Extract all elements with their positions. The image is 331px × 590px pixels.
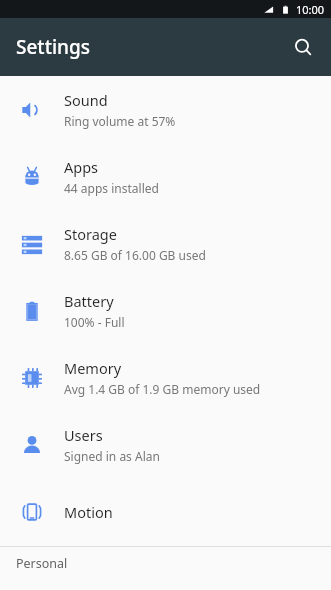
button[interactable]: Motion: [0, 478, 331, 545]
staticText: Users: [64, 425, 103, 445]
staticText: Ring volume at 57%: [64, 113, 176, 129]
button[interactable]: Search: [283, 27, 323, 67]
button[interactable]: Apps: [0, 143, 331, 210]
staticText: 100% - Full: [64, 314, 125, 330]
button[interactable]: Battery: [0, 277, 331, 344]
button[interactable]: Users: [0, 411, 331, 478]
staticText: Battery: [64, 291, 114, 311]
staticText: Avg 1.4 GB of 1.9 GB memory used: [64, 381, 261, 397]
staticText: 44 apps installed: [64, 180, 159, 196]
staticText: Sound: [64, 90, 108, 110]
button[interactable]: Memory: [0, 344, 331, 411]
staticText: Apps: [64, 157, 99, 177]
staticText: 8.65 GB of 16.00 GB used: [64, 247, 206, 263]
staticText: Motion: [64, 502, 113, 522]
button[interactable]: Storage: [0, 210, 331, 277]
staticText: Signed in as Alan: [64, 448, 160, 464]
staticText: Storage: [64, 224, 117, 244]
staticText: Settings: [16, 34, 90, 60]
staticText: Personal: [16, 555, 68, 572]
staticText: Memory: [64, 358, 122, 378]
button[interactable]: Sound: [0, 76, 331, 143]
staticText: 10:00: [296, 2, 325, 17]
